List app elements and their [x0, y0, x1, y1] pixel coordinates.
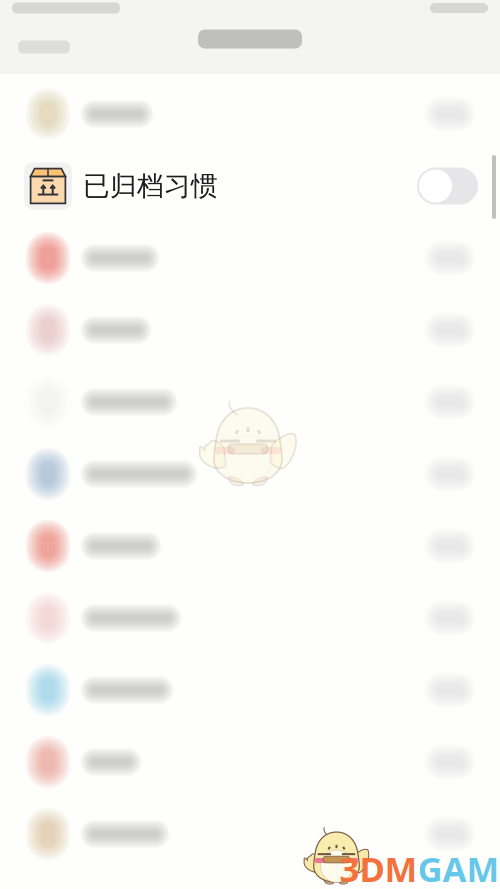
button[interactable] — [0, 366, 500, 438]
button[interactable] — [0, 726, 500, 798]
button[interactable] — [0, 78, 500, 150]
staticText: 已归档习惯 — [83, 170, 218, 202]
staticText: 3DM — [339, 845, 417, 889]
button[interactable] — [0, 582, 500, 654]
button[interactable] — [0, 438, 500, 510]
button[interactable] — [0, 798, 500, 870]
button[interactable]: 已归档习惯 — [0, 150, 500, 222]
button[interactable] — [0, 294, 500, 366]
button[interactable]: Back — [0, 40, 70, 53]
button[interactable] — [0, 510, 500, 582]
staticText: GAME — [417, 845, 500, 889]
button[interactable] — [0, 222, 500, 294]
button[interactable] — [0, 654, 500, 726]
